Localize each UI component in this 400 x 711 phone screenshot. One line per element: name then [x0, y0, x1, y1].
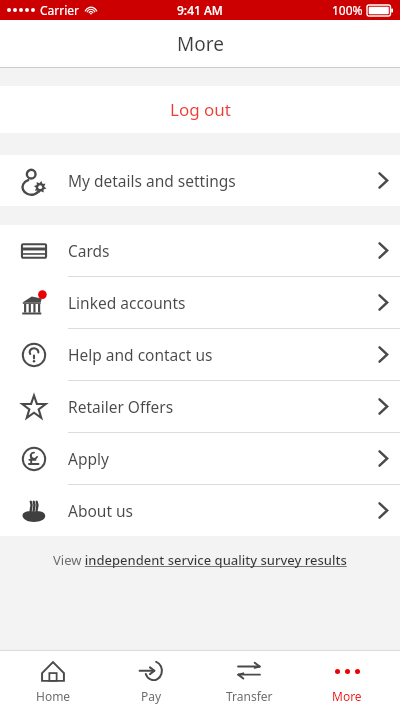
button[interactable]: Help and contact us: [0, 329, 400, 380]
button[interactable]: Linked accounts: [0, 277, 400, 328]
staticText: Apply: [68, 448, 109, 469]
staticText: 100%: [332, 2, 363, 18]
staticText: Retailer Offers: [68, 396, 174, 417]
button[interactable]: Log out: [0, 86, 400, 133]
staticText: Pay: [141, 688, 162, 704]
button[interactable]: Apply: [0, 433, 400, 484]
staticText: My details and settings: [68, 170, 236, 191]
staticText: About us: [68, 500, 134, 521]
button[interactable]: About us: [0, 485, 400, 536]
staticText: View independent service quality survey …: [53, 551, 347, 569]
staticText: Carrier: [40, 2, 80, 18]
staticText: Home: [36, 688, 71, 704]
staticText: More: [177, 31, 224, 57]
staticText: 9:41 AM: [177, 2, 223, 18]
staticText: Log out: [170, 98, 231, 121]
staticText: Linked accounts: [68, 292, 186, 313]
button[interactable]: View independent service quality survey …: [0, 536, 400, 584]
button[interactable]: More: [302, 651, 392, 711]
button[interactable]: Pay: [106, 651, 196, 711]
staticText: Transfer: [226, 688, 273, 704]
staticText: Cards: [68, 240, 110, 261]
staticText: More: [332, 688, 362, 704]
button[interactable]: Cards: [0, 225, 400, 276]
button[interactable]: Home: [8, 651, 98, 711]
staticText: Help and contact us: [68, 344, 213, 365]
button[interactable]: My details and settings: [0, 155, 400, 206]
button[interactable]: Retailer Offers: [0, 381, 400, 432]
button[interactable]: Transfer: [204, 651, 294, 711]
